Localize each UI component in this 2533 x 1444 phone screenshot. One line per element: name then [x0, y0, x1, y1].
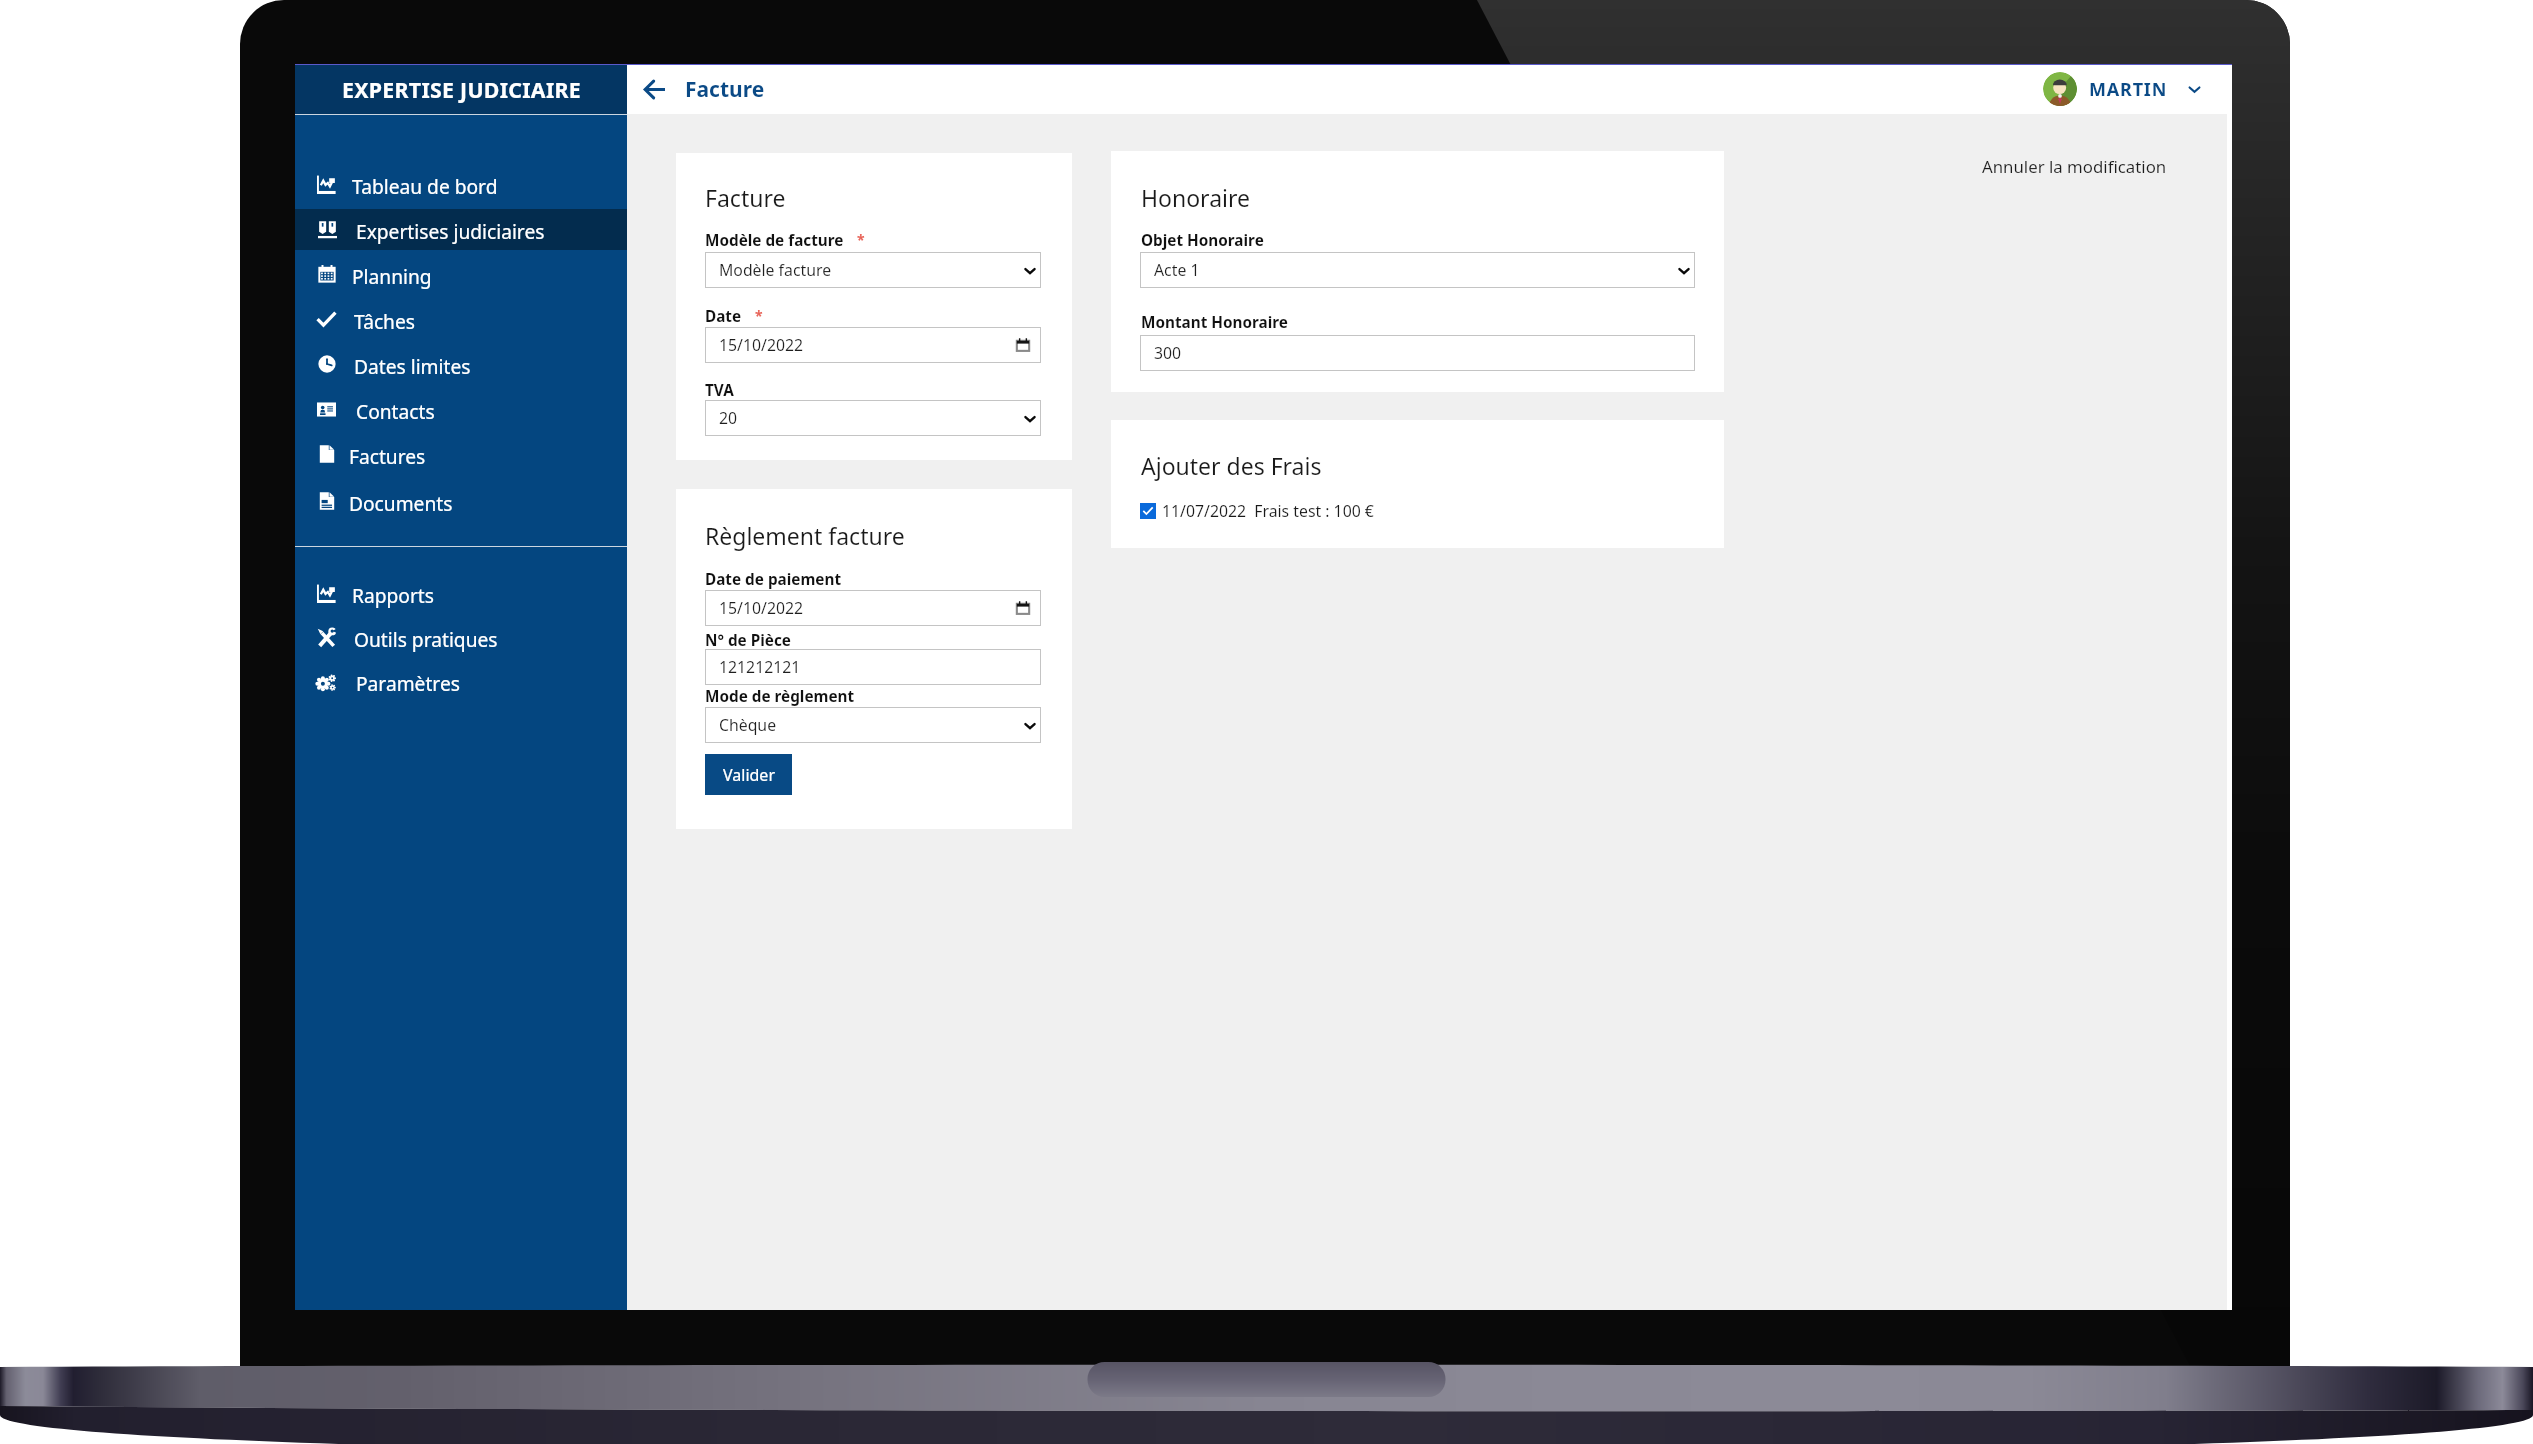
staticText: Objet Honoraire — [1141, 230, 1264, 251]
button[interactable]: 15/10/2022 — [705, 590, 1041, 626]
staticText: Date de paiement — [705, 569, 842, 590]
button[interactable]: Annuler la modification — [1982, 155, 2167, 178]
staticText: Paramètres — [356, 670, 460, 696]
button[interactable]: Tableau de bord — [295, 162, 627, 207]
button[interactable]: Paramètres — [295, 659, 627, 704]
staticText: Valider — [723, 764, 775, 786]
staticText: TVA — [705, 380, 734, 401]
button[interactable]: 20 — [705, 400, 1041, 436]
staticText: * — [755, 306, 763, 325]
staticText: MARTIN — [2089, 77, 2168, 102]
staticText: Date — [705, 306, 742, 327]
staticText: Factures — [349, 443, 426, 469]
button[interactable]: Expertises judiciaires — [295, 207, 627, 252]
button[interactable]: Back — [635, 70, 673, 108]
staticText: Tâches — [354, 308, 415, 334]
staticText: Ajouter des Frais — [1141, 450, 1322, 481]
button[interactable]: Outils pratiques — [295, 615, 627, 660]
button[interactable]: Chèque — [705, 707, 1041, 743]
button[interactable]: Documents — [295, 479, 627, 524]
staticText: Montant Honoraire — [1141, 312, 1288, 333]
staticText: Facture — [685, 75, 765, 104]
staticText: Contacts — [356, 398, 435, 424]
button[interactable]: 15/10/2022 — [705, 327, 1041, 363]
staticText: Facture — [705, 182, 786, 213]
button[interactable]: Acte 1 — [1140, 252, 1695, 288]
staticText: * — [857, 230, 865, 249]
staticText: 15/10/2022 — [719, 334, 804, 356]
staticText: Mode de règlement — [705, 686, 855, 707]
staticText: Chèque — [719, 714, 777, 736]
staticText: Acte 1 — [1154, 259, 1200, 281]
staticText: Expertises judiciaires — [356, 218, 545, 244]
button[interactable]: Modèle facture — [705, 252, 1041, 288]
staticText: N° de Pièce — [705, 630, 791, 651]
staticText: Honoraire — [1141, 182, 1250, 213]
button[interactable]: MARTIN — [2037, 68, 2207, 110]
button[interactable]: Contacts — [295, 387, 627, 432]
staticText: 121212121 — [719, 656, 801, 678]
staticText: EXPERTISE JUDICIAIRE — [342, 75, 581, 104]
button[interactable]: 11/07/2022 Frais test : 100 € — [1140, 500, 1374, 522]
staticText: 20 — [719, 407, 738, 429]
staticText: Dates limites — [354, 353, 471, 379]
staticText: Documents — [349, 490, 453, 516]
staticText: Rapports — [352, 582, 434, 608]
staticText: Modèle facture — [719, 259, 832, 281]
staticText: Planning — [352, 263, 432, 289]
staticText: Tableau de bord — [352, 173, 498, 199]
button[interactable]: Rapports — [295, 571, 627, 616]
button[interactable]: 121212121 — [705, 649, 1041, 685]
staticText: Outils pratiques — [354, 626, 498, 652]
button[interactable]: 300 — [1140, 335, 1695, 371]
staticText: Modèle de facture — [705, 230, 844, 251]
staticText: 300 — [1154, 342, 1182, 364]
button[interactable]: Valider — [705, 754, 792, 795]
button[interactable]: Planning — [295, 252, 627, 297]
button[interactable]: Factures — [295, 432, 627, 477]
button[interactable]: Tâches — [295, 297, 627, 342]
staticText: 15/10/2022 — [719, 597, 804, 619]
staticText: 11/07/2022 Frais test : 100 € — [1162, 500, 1374, 522]
staticText: Règlement facture — [705, 520, 905, 551]
button[interactable]: Dates limites — [295, 342, 627, 387]
